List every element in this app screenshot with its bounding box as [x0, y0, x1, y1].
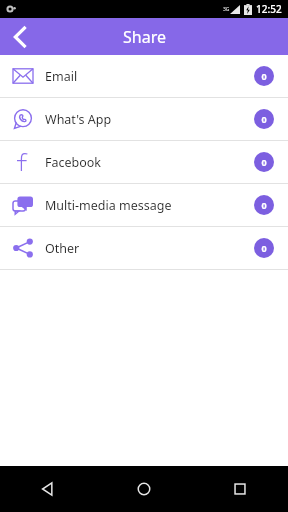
staticText: 0: [261, 70, 267, 82]
staticText: Facebook: [45, 154, 102, 171]
button[interactable]: Recents: [192, 466, 288, 512]
staticText: Other: [45, 240, 80, 257]
button[interactable]: Facebook: [0, 141, 288, 183]
staticText: What's App: [45, 111, 112, 128]
button[interactable]: Back: [0, 18, 38, 55]
staticText: 3G: [223, 6, 230, 13]
button[interactable]: Other: [0, 227, 288, 269]
button[interactable]: Back: [0, 466, 96, 512]
staticText: 0: [261, 113, 267, 125]
staticText: Email: [45, 68, 78, 85]
staticText: 0: [261, 199, 267, 211]
button[interactable]: Home: [96, 466, 192, 512]
button[interactable]: Multi-media message: [0, 184, 288, 226]
button[interactable]: Email: [0, 55, 288, 97]
staticText: 0: [261, 242, 267, 254]
staticText: Share: [123, 26, 166, 48]
staticText: Multi-media message: [45, 197, 172, 214]
button[interactable]: What's App: [0, 98, 288, 140]
staticText: 12:52: [256, 2, 282, 16]
staticText: 0: [261, 156, 267, 168]
